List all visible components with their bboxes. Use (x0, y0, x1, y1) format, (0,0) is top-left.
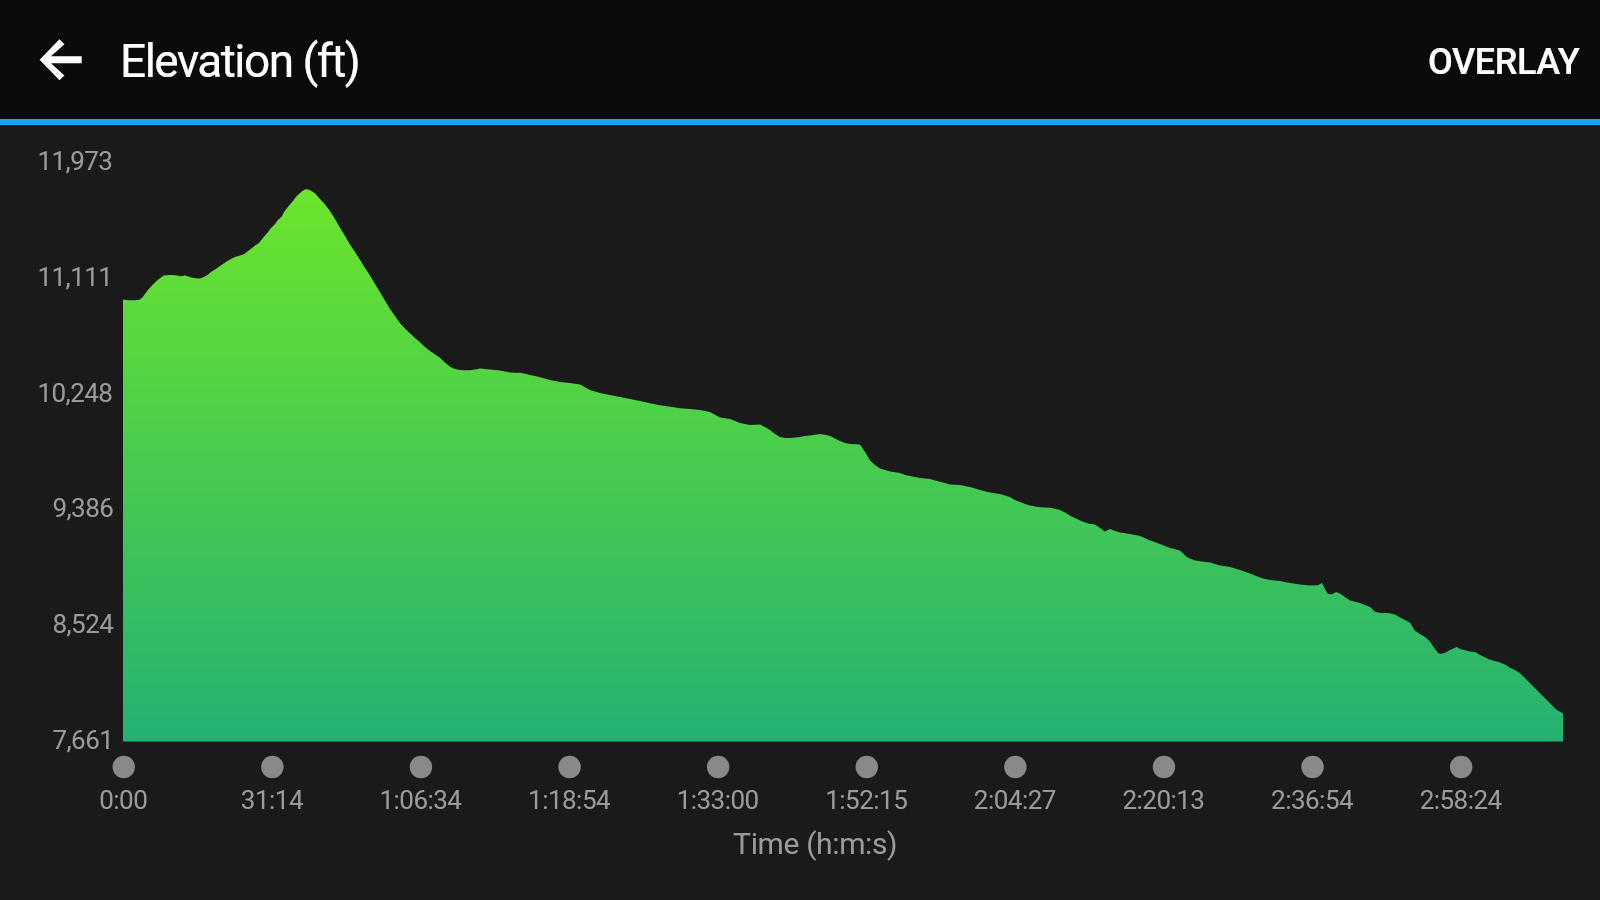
staticText: Elevation (ft) (120, 34, 360, 88)
staticText: OVERLAY (1428, 41, 1580, 83)
button[interactable]: Navigate back (14, 13, 108, 107)
button[interactable]: OVERLAY (1406, 19, 1600, 105)
